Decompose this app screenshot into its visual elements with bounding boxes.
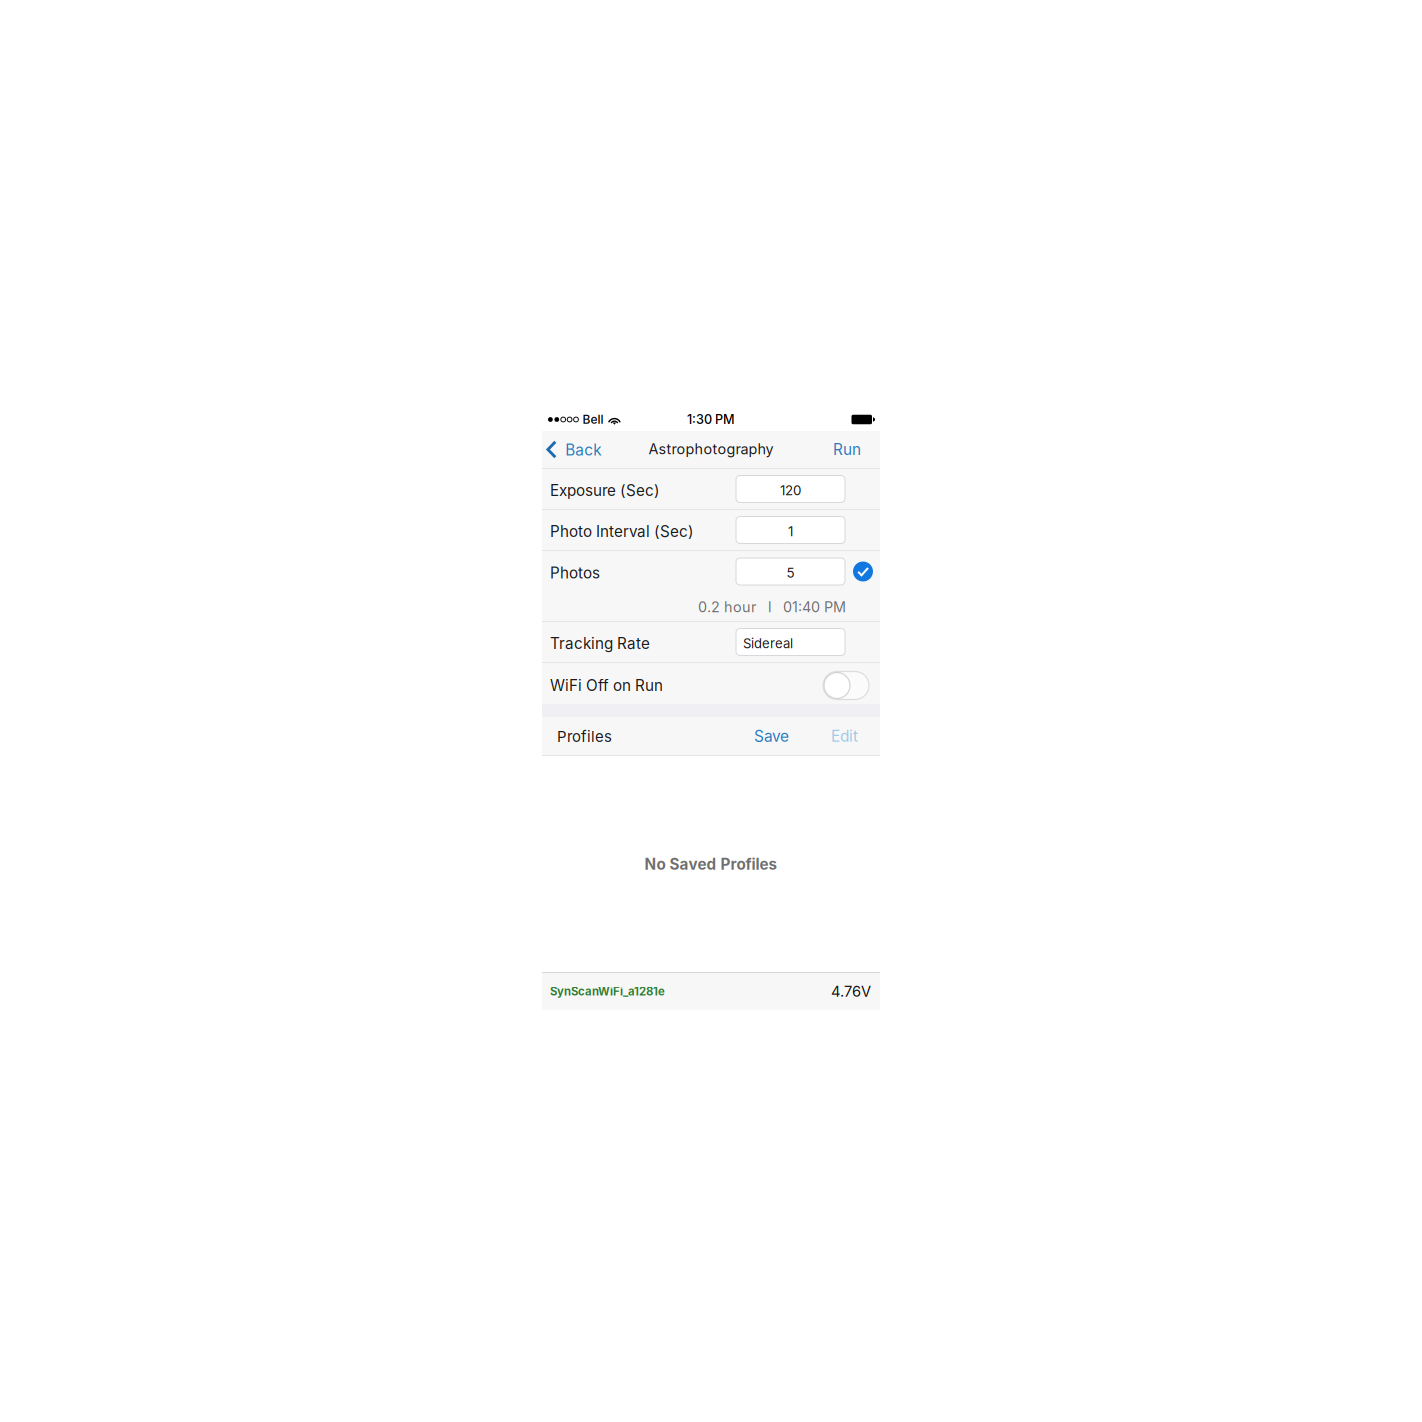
staticText: WiFi Off on Run (550, 676, 663, 695)
staticText: Edit (831, 727, 858, 745)
staticText: 120 (780, 482, 801, 498)
button[interactable]: Exposure (Sec) (736, 475, 845, 502)
staticText: Tracking Rate (550, 634, 650, 653)
button[interactable]: Photo Interval (Sec) (736, 516, 845, 543)
staticText: Bell (582, 412, 603, 427)
staticText: 5 (786, 565, 794, 581)
staticText: Photo Interval (Sec) (550, 522, 694, 541)
staticText: 0.2 hour l 01:40 PM (698, 598, 846, 616)
button[interactable]: Edit (822, 717, 868, 755)
staticText: Back (565, 441, 601, 459)
button[interactable]: Confirm (845, 561, 873, 581)
staticText: 1:30 PM (687, 412, 735, 427)
staticText: Photos (550, 564, 600, 582)
button[interactable]: Back (542, 431, 607, 468)
staticText: 4.76V (831, 983, 871, 1000)
button[interactable]: Photos (736, 558, 845, 585)
staticText: Profiles (557, 727, 612, 746)
staticText: Astrophotography (648, 440, 773, 458)
staticText: SynScanWiFi_a1281e (550, 985, 665, 998)
staticText: 1 (788, 523, 793, 539)
staticText: Sidereal (743, 636, 793, 651)
button[interactable]: Run (825, 431, 880, 468)
staticText: Save (754, 727, 789, 745)
button[interactable]: Tracking Rate (736, 628, 845, 655)
staticText: Run (833, 440, 861, 459)
staticText: No Saved Profiles (644, 855, 777, 873)
button[interactable]: WiFi Off on Run (823, 669, 869, 697)
button[interactable]: Save (744, 717, 799, 755)
staticText: Exposure (Sec) (550, 481, 660, 500)
